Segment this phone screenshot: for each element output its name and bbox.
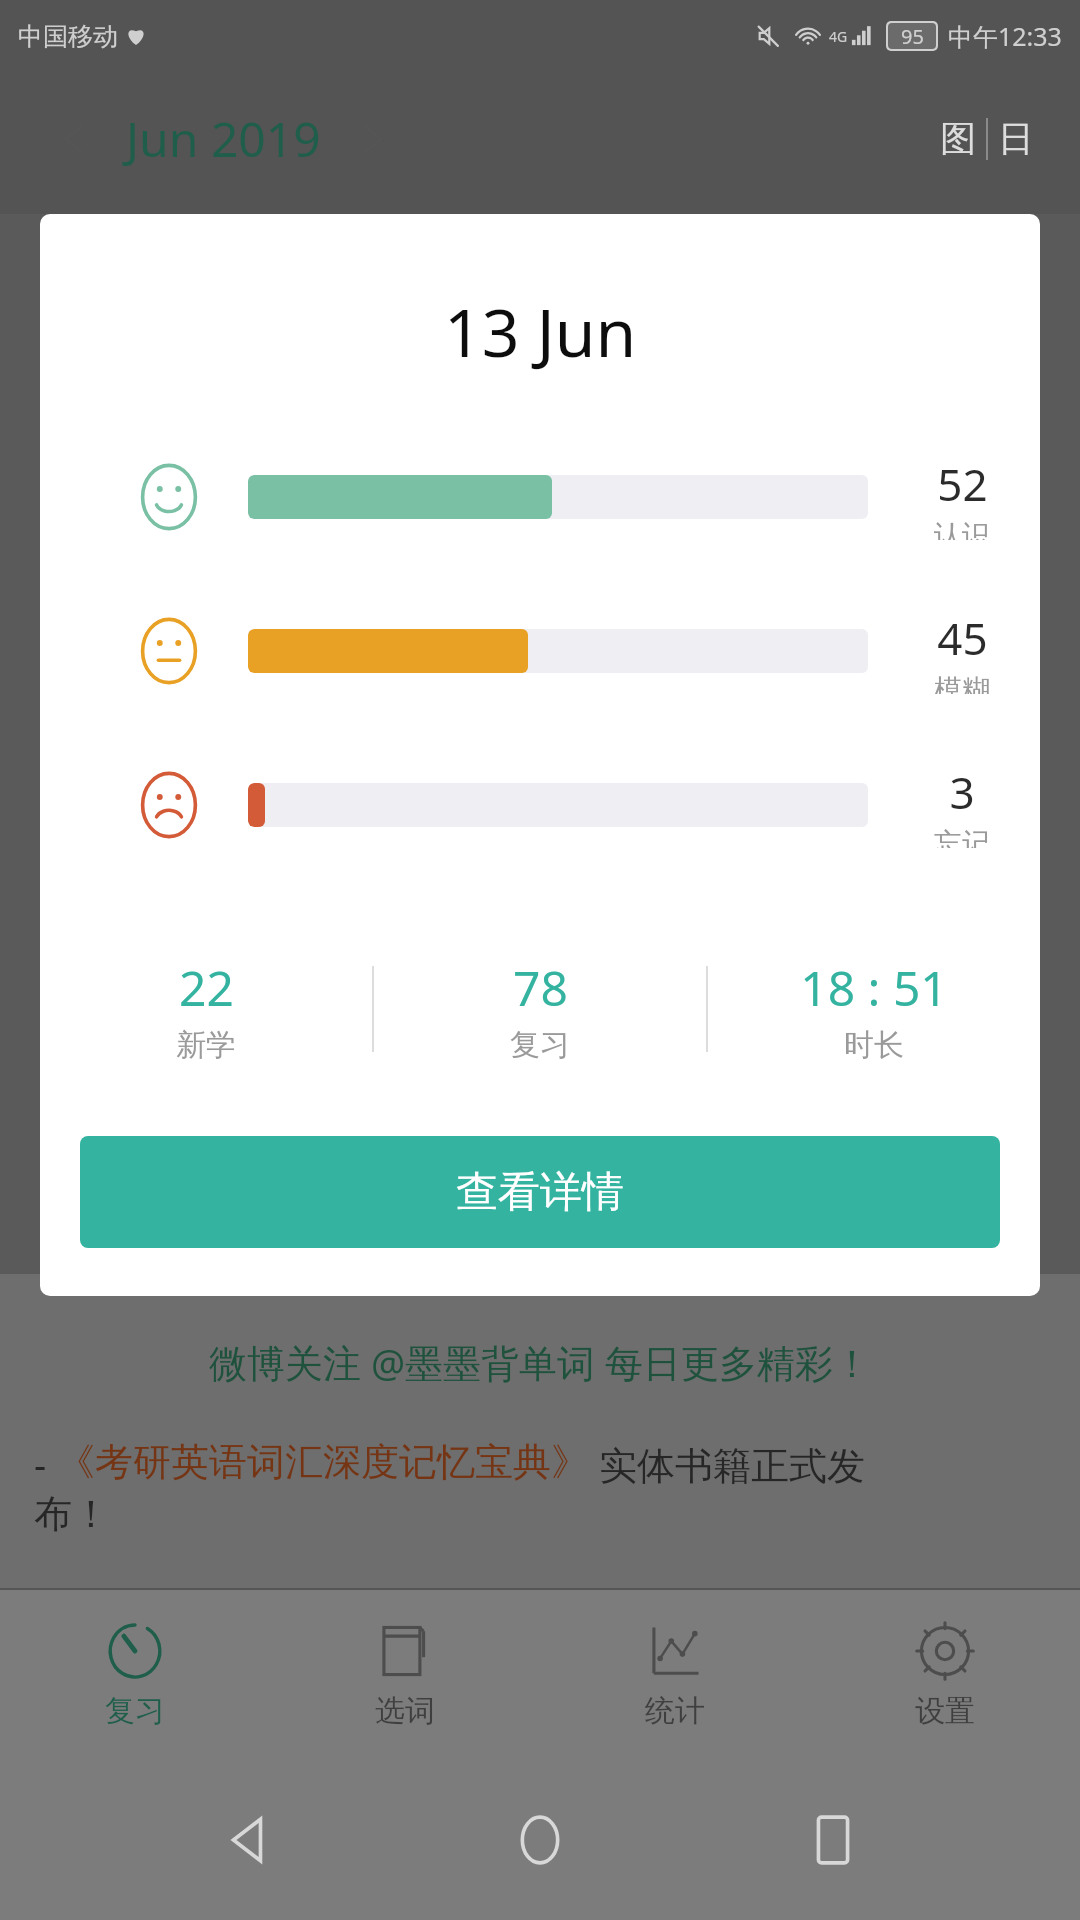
button[interactable]: 22 (40, 955, 372, 1064)
staticText: 22 (179, 955, 234, 1020)
staticText: 新学 (176, 1026, 236, 1064)
staticText: Jun 2019 (126, 106, 321, 171)
staticText: 设置 (915, 1692, 975, 1730)
button[interactable]: 18 : 51 (708, 955, 1040, 1064)
staticText: 图 (940, 116, 976, 161)
staticText: 18 : 51 (800, 955, 948, 1020)
button[interactable]: 统计 (540, 1590, 810, 1760)
button[interactable]: 图 (930, 116, 986, 161)
staticText: 45 (937, 608, 988, 668)
staticText: 52 (937, 454, 988, 514)
button[interactable]: 日 (988, 116, 1044, 161)
staticText: 模糊 (934, 672, 990, 694)
staticText: 复习 (105, 1692, 165, 1730)
staticText: 复习 (510, 1026, 570, 1064)
button[interactable]: 设置 (810, 1590, 1080, 1760)
staticText: 统计 (645, 1692, 705, 1730)
button[interactable]: Recents (788, 1795, 878, 1885)
staticText: 78 (513, 955, 568, 1020)
staticText: 中午12:33 (948, 19, 1062, 53)
staticText: 中国移动 (18, 21, 118, 52)
staticText: 认识 (934, 518, 990, 540)
staticText: 布！ (34, 1490, 110, 1538)
staticText: 3 (949, 762, 975, 822)
staticText: 忘记 (934, 826, 990, 848)
staticText: 13 Jun (444, 286, 637, 376)
button[interactable]: 78 (374, 955, 706, 1064)
staticText: 时长 (844, 1026, 904, 1064)
staticText: - (34, 1438, 57, 1490)
staticText: 查看详情 (456, 1166, 624, 1219)
button[interactable]: 选词 (270, 1590, 540, 1760)
staticText: 《考研英语词汇深度记忆宝典》 (57, 1438, 589, 1486)
button[interactable]: 查看详情 (80, 1136, 1000, 1248)
staticText: 选词 (375, 1692, 435, 1730)
staticText: 95 (901, 23, 924, 49)
button[interactable]: Home (495, 1795, 585, 1885)
staticText: 微博关注 @墨墨背单词 每日更多精彩！ (209, 1336, 871, 1388)
button[interactable]: Back (203, 1795, 293, 1885)
staticText: 4G (829, 27, 848, 46)
staticText: 日 (998, 116, 1034, 161)
button[interactable]: Jun 2019 (126, 106, 321, 171)
button[interactable]: 复习 (0, 1590, 270, 1760)
staticText: 实体书籍正式发 (589, 1438, 865, 1490)
